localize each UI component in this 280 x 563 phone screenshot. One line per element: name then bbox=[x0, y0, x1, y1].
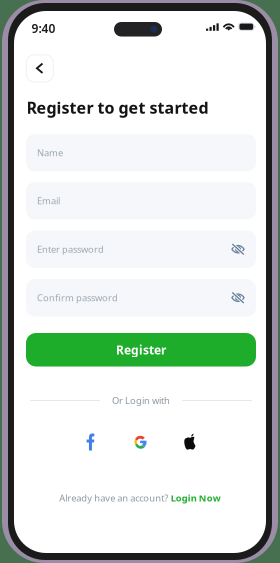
button[interactable]: Show Enter password bbox=[226, 237, 250, 261]
button[interactable]: Show Confirm password bbox=[226, 286, 250, 310]
staticText: Name bbox=[37, 147, 63, 159]
staticText: Register to get started bbox=[26, 97, 208, 118]
staticText: Login Now bbox=[171, 492, 221, 504]
button[interactable]: Continue with Google bbox=[123, 427, 157, 457]
staticText: Already have an account? bbox=[59, 492, 168, 504]
staticText: Confirm password bbox=[37, 292, 118, 304]
button[interactable]: Register bbox=[26, 333, 256, 366]
staticText: Email bbox=[37, 195, 60, 207]
button[interactable]: Continue with Apple bbox=[173, 427, 207, 457]
button[interactable]: Already have an account? bbox=[14, 491, 266, 505]
staticText: Register bbox=[116, 342, 166, 358]
staticText: Enter password bbox=[37, 243, 104, 255]
button[interactable]: Back bbox=[26, 55, 53, 82]
staticText: 9:40 bbox=[31, 20, 55, 36]
button[interactable]: Continue with Facebook bbox=[73, 427, 107, 457]
staticText: Or Login with bbox=[112, 394, 170, 407]
